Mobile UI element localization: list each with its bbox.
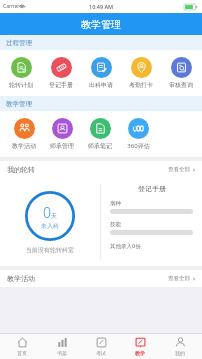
staticText: 考试: [96, 350, 106, 356]
button[interactable]: 审核查询: [162, 55, 200, 91]
button[interactable]: 教学活动: [5, 116, 43, 152]
staticText: 首页: [17, 350, 27, 356]
staticText: 考勤打卡: [129, 81, 153, 89]
staticText: Carrier: [3, 3, 20, 10]
button[interactable]: 书架: [45, 337, 79, 356]
staticText: 我的轮转: [7, 165, 35, 174]
staticText: 教学管理: [6, 100, 32, 108]
button[interactable]: 查看全部: [168, 275, 196, 282]
staticText: 教学活动: [7, 274, 35, 283]
staticText: 查看全部: [168, 166, 190, 173]
button[interactable]: 教学: [123, 337, 157, 356]
staticText: 教学活动: [12, 142, 36, 150]
staticText: 当前没有轮转科室: [26, 246, 74, 254]
button[interactable]: 登记手册: [42, 55, 80, 91]
staticText: 教学: [135, 350, 145, 356]
button[interactable]: 师承管理: [43, 116, 81, 152]
staticText: 其他录入0份: [110, 242, 141, 250]
staticText: 病种: [110, 200, 121, 207]
staticText: 出科申请: [89, 81, 113, 89]
staticText: 未入科: [41, 222, 59, 230]
staticText: 技能: [110, 221, 121, 228]
button[interactable]: 首页: [5, 337, 39, 356]
staticText: 过程管理: [6, 39, 32, 47]
staticText: 书架: [57, 350, 67, 356]
button[interactable]: 出科申请: [82, 55, 120, 91]
staticText: 天: [51, 212, 57, 220]
staticText: 审核查询: [169, 81, 193, 89]
staticText: 师承管理: [50, 142, 74, 150]
button[interactable]: 考勤打卡: [122, 55, 160, 91]
staticText: 登记手册: [138, 184, 166, 193]
staticText: 查看全部: [168, 275, 190, 282]
staticText: 0: [43, 203, 51, 222]
button[interactable]: 查看全部: [168, 166, 196, 173]
button[interactable]: 轮转计划: [2, 55, 40, 91]
staticText: 轮转计划: [9, 81, 33, 89]
button[interactable]: 我的: [163, 337, 197, 356]
staticText: 10:49 AM: [89, 3, 114, 10]
staticText: 师承笔记: [88, 142, 112, 150]
staticText: 教学管理: [81, 18, 121, 31]
staticText: 我的: [175, 350, 185, 356]
staticText: 360评估: [127, 142, 150, 150]
button[interactable]: 考试: [84, 337, 118, 356]
staticText: 登记手册: [49, 81, 73, 89]
button[interactable]: 360评估: [119, 116, 157, 152]
button[interactable]: 师承笔记: [81, 116, 119, 152]
